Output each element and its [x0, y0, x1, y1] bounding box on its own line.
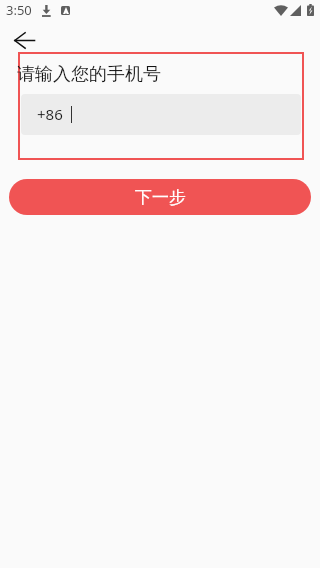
- staticText: +86: [37, 104, 63, 124]
- button[interactable]: +86: [21, 94, 301, 135]
- staticText: 请输入您的手机号: [17, 63, 161, 86]
- button[interactable]: Back: [0, 26, 48, 56]
- staticText: 3:50: [6, 1, 32, 19]
- button[interactable]: 下一步: [9, 179, 311, 215]
- staticText: 下一步: [135, 187, 186, 208]
